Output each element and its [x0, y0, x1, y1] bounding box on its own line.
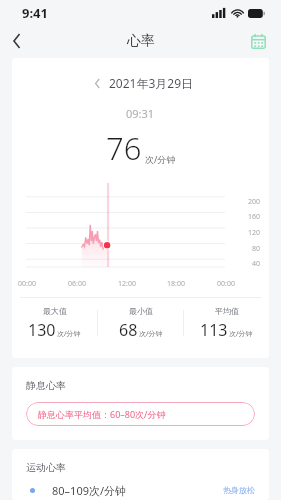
staticText: 40 [252, 259, 261, 269]
staticText: 80 [252, 244, 261, 254]
staticText: 160 [248, 212, 261, 222]
staticText: 次/分钟 [139, 329, 163, 339]
button[interactable]: 平均值 [184, 306, 269, 341]
button[interactable]: Back [0, 26, 34, 56]
staticText: 次/分钟 [57, 329, 81, 339]
button[interactable]: 最大值 [12, 306, 97, 341]
staticText: 18:00 [167, 279, 185, 289]
staticText: 9:41 [22, 4, 48, 22]
button[interactable]: 静息心率平均值：60–80次/分钟 [26, 402, 255, 426]
staticText: 次/分钟 [229, 329, 253, 339]
staticText: 热身放松 [223, 485, 255, 495]
staticText: 静息心率 [26, 379, 66, 392]
staticText: 130 [28, 319, 56, 341]
staticText: 静息心率平均值：60–80次/分钟 [38, 408, 166, 420]
staticText: 心率 [127, 32, 155, 50]
button[interactable]: 最小值 [98, 306, 183, 341]
staticText: 06:00 [68, 279, 86, 289]
staticText: 00:00 [18, 279, 36, 289]
button[interactable]: Calendar [243, 26, 273, 56]
staticText: 09:31 [126, 106, 155, 121]
staticText: 68 [119, 319, 138, 341]
button[interactable]: Previous day [88, 74, 106, 92]
staticText: 平均值 [215, 306, 239, 316]
staticText: 次/分钟 [145, 153, 176, 165]
staticText: 运动心率 [26, 461, 66, 474]
staticText: 最大值 [43, 306, 67, 316]
button[interactable]: 80–109次/分钟 [12, 480, 269, 500]
staticText: 12:00 [118, 279, 136, 289]
staticText: 113 [200, 319, 228, 341]
staticText: 00:00 [217, 279, 235, 289]
staticText: 200 [248, 197, 261, 207]
staticText: 2021年3月29日 [109, 75, 194, 91]
staticText: 76 [106, 127, 142, 169]
staticText: 80–109次/分钟 [52, 483, 127, 498]
staticText: 120 [248, 228, 261, 238]
staticText: 最小值 [129, 306, 153, 316]
